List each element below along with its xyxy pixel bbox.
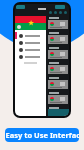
button[interactable]	[48, 65, 68, 74]
button[interactable]	[15, 53, 46, 60]
staticText: Easy to Use Interface	[5, 130, 79, 140]
button[interactable]: Action	[49, 11, 52, 14]
button[interactable]	[48, 50, 68, 59]
button[interactable]	[15, 46, 46, 53]
button[interactable]: Menu	[55, 5, 65, 9]
button[interactable]: Action	[64, 11, 67, 14]
button[interactable]: Action	[59, 11, 62, 14]
button[interactable]	[48, 35, 68, 44]
button[interactable]	[48, 20, 68, 29]
button[interactable]	[15, 32, 46, 39]
button[interactable]: Search	[16, 5, 25, 9]
button[interactable]: Easy to Use Interface	[5, 128, 79, 142]
button[interactable]	[48, 95, 68, 104]
button[interactable]	[48, 110, 68, 116]
button[interactable]	[48, 80, 68, 89]
button[interactable]: Action	[54, 11, 57, 14]
button[interactable]	[15, 39, 46, 46]
